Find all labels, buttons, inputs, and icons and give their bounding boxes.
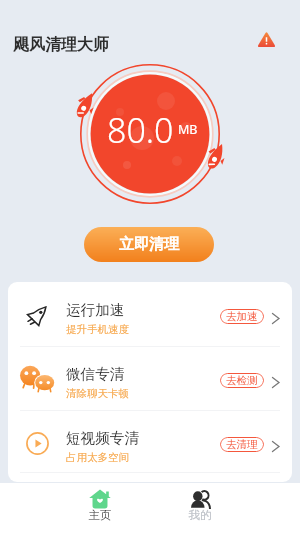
button[interactable]: 短视频专清: [8, 410, 292, 474]
staticText: 清除聊天卡顿: [66, 387, 129, 400]
staticText: 立即清理: [119, 235, 179, 254]
staticText: 微信专清: [66, 365, 125, 383]
staticText: 去加速: [226, 310, 258, 323]
button[interactable]: 立即清理: [84, 227, 214, 262]
staticText: 80.0: [107, 107, 174, 153]
staticText: 飓风清理大师: [13, 35, 109, 55]
staticText: 提升手机速度: [66, 323, 129, 336]
button[interactable]: 我的: [170, 484, 230, 532]
staticText: 去清理: [226, 438, 258, 451]
staticText: 主页: [70, 508, 130, 522]
staticText: MB: [178, 121, 198, 138]
staticText: 短视频专清: [66, 429, 139, 447]
staticText: 运行加速: [66, 301, 125, 319]
staticText: 去检测: [226, 374, 258, 387]
button[interactable]: 微信专清: [8, 346, 292, 410]
button[interactable]: 主页: [70, 484, 130, 532]
button[interactable]: Warning: [255, 29, 278, 50]
staticText: 我的: [170, 508, 230, 522]
button[interactable]: 运行加速: [8, 282, 292, 346]
staticText: 占用太多空间: [66, 451, 129, 464]
